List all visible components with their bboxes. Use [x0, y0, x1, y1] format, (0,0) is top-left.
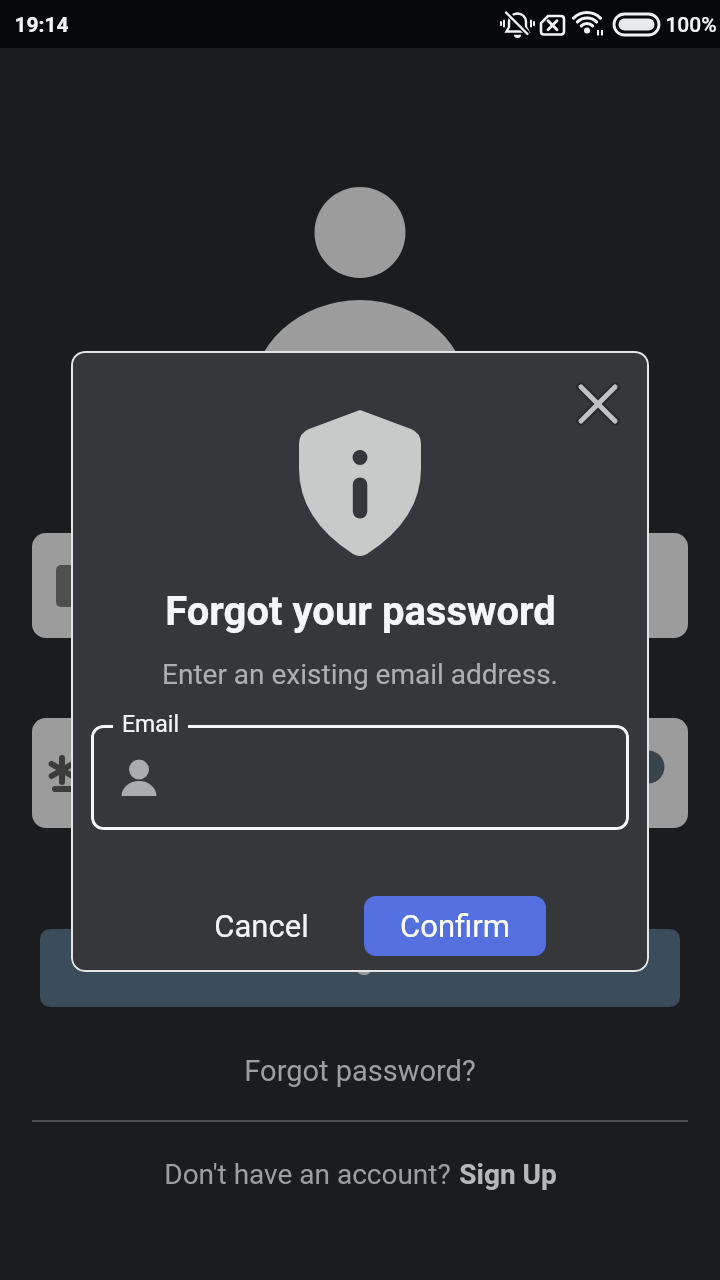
staticText: Cancel [214, 908, 309, 944]
staticText: Forgot password? [244, 1054, 476, 1088]
staticText: Enter an existing email address. [162, 658, 558, 691]
button[interactable]: Confirm [364, 896, 546, 956]
staticText: 100% [665, 13, 717, 38]
staticText: Email [122, 711, 179, 738]
staticText: 19:14 [14, 13, 69, 38]
staticText: Sign Up [459, 1158, 557, 1191]
button[interactable]: Forgot password? [244, 1054, 476, 1088]
staticText: Don't have an account? [164, 1158, 451, 1191]
button[interactable]: Cancel [201, 896, 321, 956]
button[interactable]: Don't have an account? [164, 1158, 557, 1191]
button[interactable] [91, 725, 629, 830]
staticText: Login [321, 940, 399, 976]
staticText: Forgot your password [165, 588, 556, 635]
button[interactable] [568, 374, 628, 434]
staticText: Confirm [400, 908, 510, 944]
button[interactable]: Login [40, 929, 680, 1007]
